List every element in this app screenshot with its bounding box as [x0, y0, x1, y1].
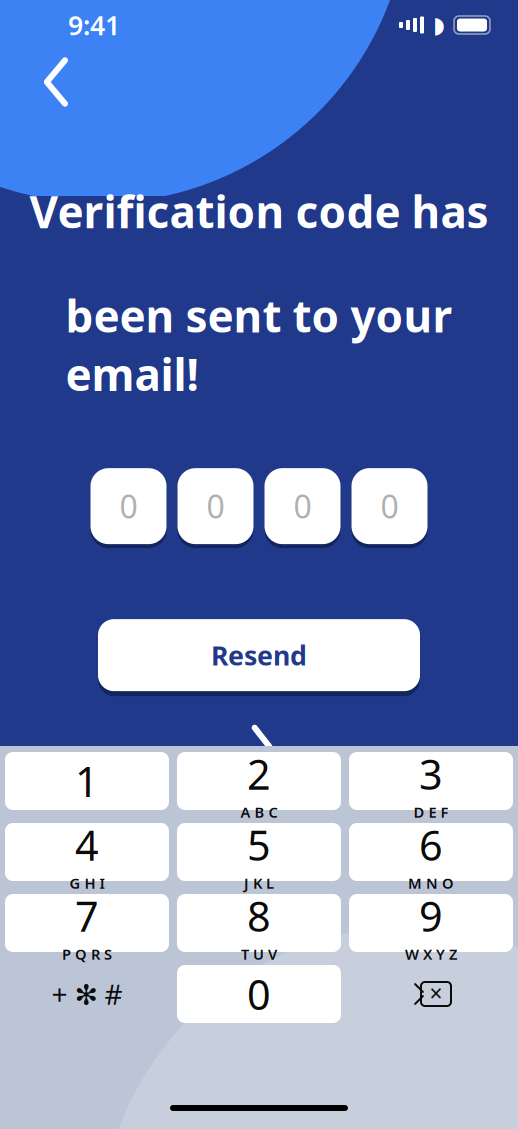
staticText: T U V [241, 944, 277, 964]
button[interactable]: 4 [5, 823, 169, 881]
staticText: ◗ [433, 12, 445, 38]
staticText: 0 [293, 485, 311, 527]
staticText: 7 [75, 888, 99, 943]
button[interactable]: 2 [177, 752, 341, 810]
staticText: 9 [419, 888, 443, 943]
staticText: M N O [408, 873, 454, 893]
staticText: 0 [247, 967, 271, 1021]
staticText: Verification code has [29, 182, 488, 240]
button[interactable]: Symbols [5, 965, 169, 1023]
staticText: 9:41 [68, 7, 120, 43]
staticText: 8 [247, 888, 271, 943]
staticText: D E F [413, 802, 448, 822]
staticText: J K L [244, 873, 274, 893]
button[interactable]: Delete [349, 965, 513, 1023]
button[interactable]: 9 [349, 894, 513, 952]
staticText: Resend [211, 637, 307, 673]
staticText: 4 [75, 817, 99, 872]
staticText: 5 [247, 817, 271, 872]
staticText: G H I [69, 873, 104, 893]
staticText: 1 [75, 754, 99, 808]
button[interactable]: 7 [5, 894, 169, 952]
button[interactable]: 3 [349, 752, 513, 810]
staticText: + ✻ # [51, 975, 122, 1013]
staticText: been sent to your email! [65, 286, 452, 403]
staticText: W X Y Z [405, 944, 457, 964]
staticText: 3 [419, 746, 443, 801]
button[interactable]: 1 [5, 752, 169, 810]
staticText: A B C [240, 802, 277, 822]
button[interactable]: 0 [177, 965, 341, 1023]
staticText: 2 [247, 746, 271, 801]
button[interactable]: Back [0, 50, 74, 110]
button[interactable]: 8 [177, 894, 341, 952]
button[interactable]: 6 [349, 823, 513, 881]
staticText: 6 [419, 817, 443, 872]
button[interactable]: Resend [98, 616, 420, 694]
staticText: × [429, 978, 442, 1008]
button[interactable]: Continue [240, 694, 278, 772]
staticText: 0 [119, 485, 137, 527]
staticText: 0 [206, 485, 224, 527]
staticText: 0 [380, 485, 398, 527]
staticText: P Q R S [62, 944, 112, 964]
button[interactable]: 5 [177, 823, 341, 881]
